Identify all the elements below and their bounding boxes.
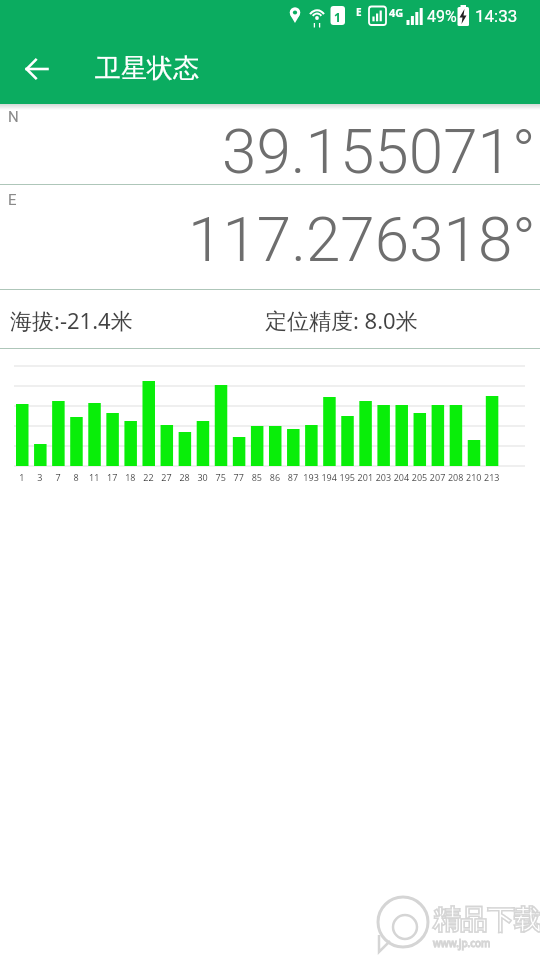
button[interactable] — [9, 41, 65, 97]
button[interactable]: E — [0, 185, 540, 289]
staticText: E — [356, 5, 362, 19]
staticText: 117.276318° — [188, 203, 536, 276]
staticText: 49% — [427, 7, 457, 26]
staticText: 14:33 — [475, 6, 518, 26]
staticText: 定位精度: 8.0米 — [265, 305, 418, 335]
staticText: 1 — [334, 9, 341, 25]
staticText: N — [8, 108, 19, 126]
button[interactable]: N — [0, 104, 540, 184]
staticText: 39.155071° — [222, 115, 536, 188]
staticText: 海拔:-21.4米 — [10, 305, 133, 335]
staticText: 4G — [389, 5, 404, 20]
staticText: E — [8, 191, 17, 209]
staticText: 卫星状态 — [95, 52, 199, 85]
